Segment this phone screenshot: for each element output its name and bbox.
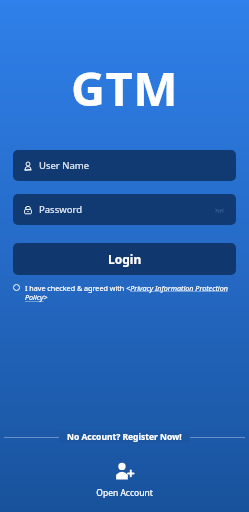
staticText: GTM — [71, 56, 178, 120]
staticText: Login — [108, 251, 142, 267]
button[interactable]: Login — [13, 243, 236, 275]
button[interactable]: User Name — [13, 150, 236, 181]
staticText: Password — [39, 203, 82, 216]
button[interactable]: Open Account — [0, 461, 249, 499]
staticText: Open Account — [96, 487, 153, 499]
staticText: No Account? Register Now! — [67, 431, 182, 443]
button[interactable]: Password — [13, 194, 236, 225]
button[interactable]: Show password — [214, 204, 225, 215]
button[interactable]: Agree checkbox — [13, 283, 236, 303]
staticText: User Name — [39, 159, 90, 172]
staticText: I have checked & agreed with <Privacy In… — [25, 283, 236, 303]
other: Agree checkbox — [13, 284, 20, 291]
